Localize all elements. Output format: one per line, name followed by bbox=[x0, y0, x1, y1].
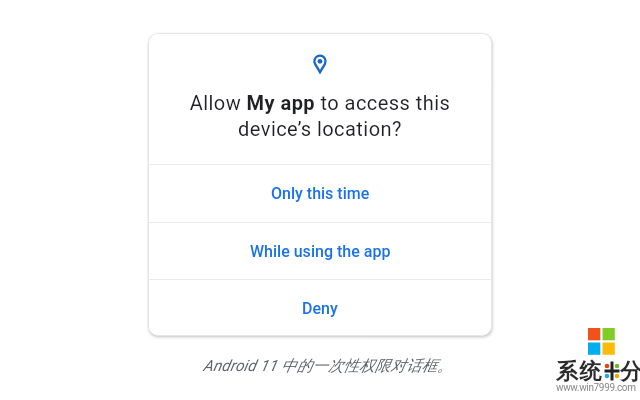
staticText: 系统 bbox=[555, 358, 602, 386]
button[interactable]: While using the app bbox=[148, 223, 492, 279]
button[interactable]: Only this time bbox=[148, 165, 492, 222]
staticText: Deny bbox=[302, 299, 338, 318]
staticText: Android 11 中的一次性权限对话框。 bbox=[203, 356, 453, 376]
staticText: Only this time bbox=[271, 184, 370, 203]
staticText: Allow My app to access this device’s loc… bbox=[148, 91, 492, 140]
staticText: 分 bbox=[620, 358, 640, 386]
button[interactable]: Deny bbox=[148, 280, 492, 336]
staticText: www.win7999.com bbox=[556, 382, 636, 394]
staticText: While using the app bbox=[250, 242, 391, 261]
